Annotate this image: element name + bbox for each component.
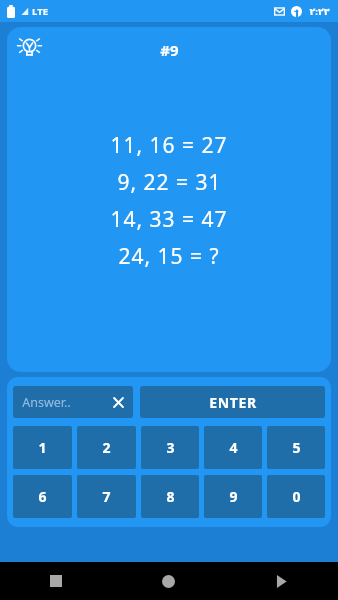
- staticText: 4: [229, 438, 238, 457]
- staticText: 6: [38, 487, 47, 506]
- staticText: 9: [229, 487, 238, 506]
- staticText: 2: [102, 438, 111, 457]
- button[interactable]: 2: [77, 426, 136, 469]
- button[interactable]: 0: [267, 475, 325, 518]
- staticText: 14, 33 = 47: [110, 205, 228, 234]
- button[interactable]: 7: [77, 475, 136, 518]
- button[interactable]: 1: [13, 426, 72, 469]
- staticText: ENTER: [209, 393, 257, 412]
- staticText: 11, 16 = 27: [110, 131, 228, 160]
- button[interactable]: 5: [267, 426, 325, 469]
- button[interactable]: 9: [204, 475, 262, 518]
- button[interactable]: 4: [204, 426, 262, 469]
- button[interactable]: 3: [141, 426, 199, 469]
- staticText: 8: [166, 487, 175, 506]
- button[interactable]: Recents: [0, 562, 112, 600]
- button[interactable]: Hint: [14, 32, 45, 63]
- button[interactable]: Answer..: [13, 386, 133, 418]
- button[interactable]: Home: [112, 562, 225, 600]
- staticText: 1: [38, 438, 47, 457]
- staticText: 9, 22 = 31: [117, 168, 222, 197]
- button[interactable]: 8: [141, 475, 199, 518]
- staticText: 24, 15 = ?: [118, 242, 220, 271]
- staticText: 3: [166, 438, 175, 457]
- staticText: LTE: [32, 5, 48, 18]
- staticText: 5: [292, 438, 301, 457]
- staticText: #9: [160, 40, 179, 60]
- staticText: ٢:٢٣: [309, 5, 330, 18]
- button[interactable]: ENTER: [140, 386, 325, 418]
- staticText: 7: [102, 487, 111, 506]
- button[interactable]: 6: [13, 475, 72, 518]
- staticText: 0: [292, 487, 301, 506]
- staticText: Answer..: [22, 394, 71, 411]
- button[interactable]: Back: [225, 562, 338, 600]
